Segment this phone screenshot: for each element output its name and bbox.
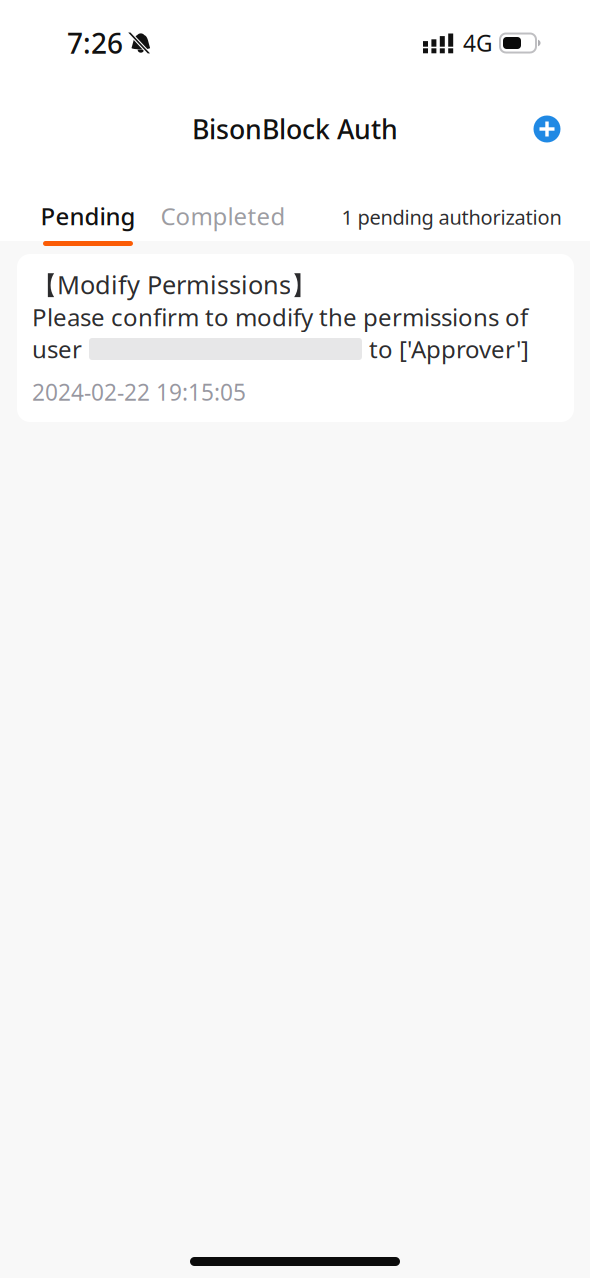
button[interactable]: Add [525,107,569,151]
button[interactable]: 1 pending authorization [325,199,578,235]
staticText: 4G [463,28,493,58]
staticText: Please confirm to modify the permissions… [32,301,528,333]
staticText: 2024-02-22 19:15:05 [32,377,246,407]
button[interactable]: Pending [29,198,147,260]
button[interactable]: Completed [147,198,299,234]
button[interactable]: 【Modify Permissions】 [17,254,574,422]
staticText: user [32,333,82,365]
staticText: Pending [40,200,135,232]
staticText: 7:26 [67,24,123,62]
staticText: 1 pending authorization [341,204,561,230]
staticText: 【Modify Permissions】 [32,268,316,301]
staticText: BisonBlock Auth [192,111,398,147]
staticText: Completed [160,200,285,232]
staticText: to ['Approver'] [369,333,529,365]
